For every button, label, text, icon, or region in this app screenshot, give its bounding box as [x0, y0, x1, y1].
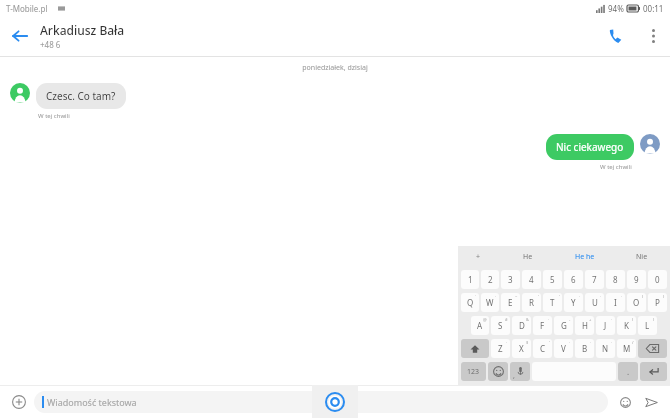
staticText: X	[519, 343, 524, 354]
button[interactable]: Back	[0, 16, 40, 56]
staticText: ·	[506, 340, 508, 345]
button[interactable]: 0	[648, 270, 667, 289]
button[interactable]: ·	[533, 316, 552, 335]
button[interactable]: 4	[522, 270, 541, 289]
staticText: ·	[495, 294, 497, 299]
button[interactable]: Nic ciekawego	[546, 134, 634, 160]
button[interactable]: ·	[596, 339, 615, 358]
button[interactable]: (	[627, 293, 646, 312]
staticText: C	[540, 343, 546, 354]
button[interactable]: ·	[585, 293, 604, 312]
button[interactable]: '	[533, 339, 552, 358]
button[interactable]: Home	[312, 385, 358, 418]
staticText: (	[642, 294, 644, 299]
button[interactable]: Czesc. Co tam?	[36, 83, 126, 109]
button[interactable]: Send	[638, 389, 664, 415]
staticText: W	[486, 297, 494, 308]
staticText: Q	[467, 297, 474, 308]
staticText: 4	[529, 274, 534, 285]
button[interactable]: +	[458, 246, 499, 268]
staticText: +	[476, 252, 481, 262]
button[interactable]: ·	[481, 293, 499, 312]
staticText: Z	[498, 343, 503, 354]
button[interactable]: Enter	[640, 362, 667, 381]
button[interactable]: Emoji	[612, 389, 638, 415]
button[interactable]: ~	[501, 293, 520, 312]
button[interactable]: 2	[481, 270, 499, 289]
staticText: /	[632, 340, 634, 345]
button[interactable]: +	[575, 316, 594, 335]
staticText: He	[523, 252, 533, 262]
button[interactable]: He	[499, 246, 556, 268]
staticText: I	[614, 297, 617, 308]
button[interactable]: Backspace	[638, 339, 667, 358]
staticText: M	[623, 343, 631, 354]
button[interactable]: /	[617, 339, 636, 358]
button[interactable]: '	[522, 293, 541, 312]
button[interactable]: Add attachment	[6, 389, 32, 415]
button[interactable]: #	[491, 316, 510, 335]
staticText: Nic ciekawego	[556, 140, 624, 154]
button[interactable]: ·	[596, 316, 615, 335]
button[interactable]: More options	[636, 19, 670, 53]
button[interactable]: 9	[627, 270, 646, 289]
staticText: L	[645, 320, 650, 331]
staticText: 0	[655, 274, 660, 285]
staticText: Y	[571, 297, 576, 308]
staticText: R	[529, 297, 534, 308]
staticText: W tej chwili	[600, 163, 632, 171]
staticText: '	[559, 294, 560, 299]
button[interactable]: -	[554, 316, 573, 335]
button[interactable]: Numbers	[461, 362, 486, 381]
staticText: .	[627, 366, 630, 377]
button[interactable]: '	[543, 293, 562, 312]
button[interactable]: 8	[606, 270, 625, 289]
button[interactable]: Call	[596, 16, 636, 56]
button[interactable]: &	[512, 316, 531, 335]
staticText: `	[475, 294, 477, 299]
staticText: S	[498, 320, 503, 331]
staticText: +	[589, 317, 592, 322]
button[interactable]: `	[461, 293, 479, 312]
button[interactable]: Shift	[461, 339, 489, 358]
button[interactable]: ·	[491, 339, 510, 358]
button[interactable]: Emoji	[488, 362, 508, 381]
button[interactable]: 5	[543, 270, 562, 289]
staticText: ·	[621, 294, 623, 299]
staticText: G	[561, 320, 567, 331]
button[interactable]: (	[617, 316, 636, 335]
staticText: )	[653, 317, 655, 322]
button[interactable]: )	[638, 316, 657, 335]
staticText: )	[663, 294, 665, 299]
staticText: ~	[515, 294, 518, 299]
staticText: Nie	[636, 252, 648, 262]
staticText: 00:11	[643, 3, 664, 14]
staticText: 6	[571, 274, 576, 285]
staticText: #	[505, 317, 508, 322]
staticText: ·	[548, 317, 550, 322]
button[interactable]: $	[512, 339, 531, 358]
staticText: ·	[600, 294, 602, 299]
button[interactable]: 7	[585, 270, 604, 289]
button[interactable]: Period	[618, 362, 638, 381]
staticText: U	[592, 297, 598, 308]
staticText: ·	[611, 317, 613, 322]
staticText: Czesc. Co tam?	[46, 89, 116, 103]
button[interactable]: Wiadomość tekstowa	[34, 391, 608, 413]
button[interactable]: 6	[564, 270, 583, 289]
button[interactable]: ·	[575, 339, 594, 358]
button[interactable]: )	[648, 293, 667, 312]
staticText: 3	[508, 274, 513, 285]
staticText: 5	[550, 274, 555, 285]
staticText: O	[633, 297, 640, 308]
button[interactable]: He he	[556, 246, 613, 268]
button[interactable]: @	[471, 316, 489, 335]
button[interactable]: ·	[564, 293, 583, 312]
button[interactable]: Nie	[613, 246, 670, 268]
button[interactable]: ·	[606, 293, 625, 312]
button[interactable]: 3	[501, 270, 520, 289]
button[interactable]: 1	[461, 270, 479, 289]
button[interactable]: ·	[554, 339, 573, 358]
button[interactable]: Voice input	[510, 362, 530, 381]
